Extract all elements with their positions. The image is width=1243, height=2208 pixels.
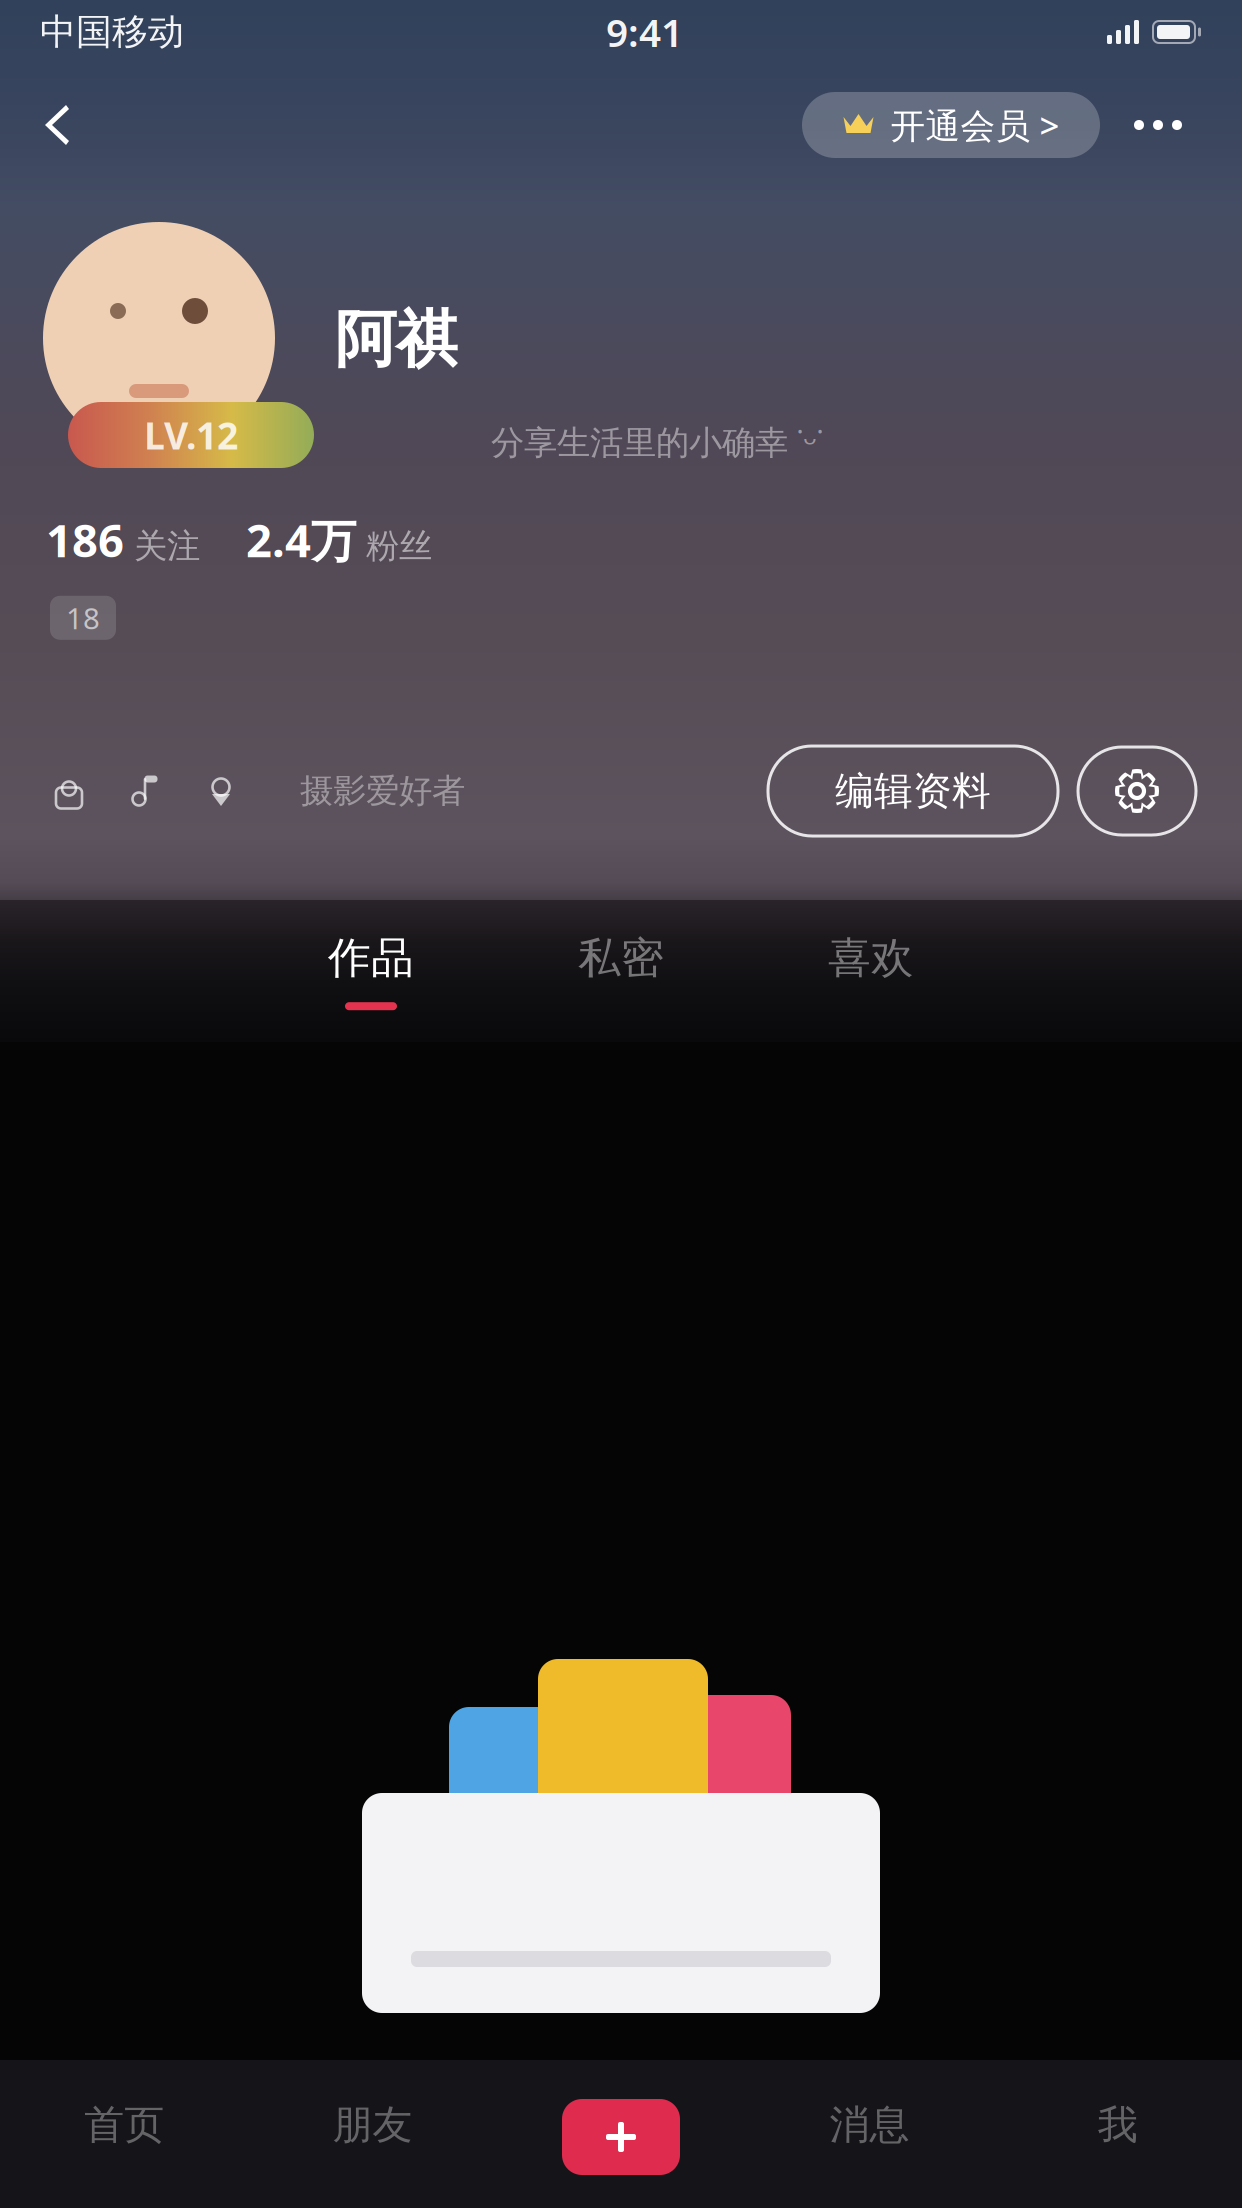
staticText: 编辑资料 [835,767,991,815]
button[interactable]: 喜欢 [746,900,996,1042]
button[interactable]: 私密 [496,900,746,1042]
button[interactable]: Music [128,774,162,808]
button[interactable]: 开通会员 > [802,92,1100,158]
staticText: 朋友 [333,2100,413,2149]
staticText: 2.4万 [246,510,356,570]
button[interactable]: Publish [497,2048,745,2202]
button[interactable]: More [1100,78,1216,172]
staticText: 开通会员 > [890,102,1059,148]
staticText: 作品 [328,932,414,984]
staticText: 9:41 [606,6,683,58]
button[interactable]: 编辑资料 [768,746,1058,836]
button[interactable]: 2.4万 [246,510,432,570]
button[interactable]: Settings [1078,747,1196,835]
button[interactable]: Back [0,78,112,172]
button[interactable]: 186 [46,510,200,570]
staticText: 分享生活里的小确幸 ˙ᵕ˙ [491,419,823,464]
staticText: 摄影爱好者 [300,770,465,811]
button[interactable]: Shop [52,774,86,808]
button[interactable]: 消息 [745,2060,994,2190]
staticText: 阿祺 [335,302,457,377]
staticText: 消息 [829,2100,909,2149]
staticText: 喜欢 [828,932,914,984]
staticText: LV.12 [144,410,238,460]
staticText: 我 [1098,2100,1138,2149]
staticText: 186 [46,510,124,570]
staticText: 私密 [578,932,664,984]
staticText: 关注 [134,526,200,567]
button[interactable]: 18 [50,596,116,640]
button[interactable]: 首页 [0,2060,248,2190]
button[interactable]: 作品 [246,900,496,1042]
staticText: 粉丝 [366,526,432,567]
button[interactable]: 我 [994,2060,1242,2190]
staticText: 18 [66,598,100,637]
button[interactable]: Location [204,774,238,808]
staticText: 中国移动 [40,10,184,54]
button[interactable]: 朋友 [248,2060,497,2190]
staticText: 首页 [84,2100,164,2149]
